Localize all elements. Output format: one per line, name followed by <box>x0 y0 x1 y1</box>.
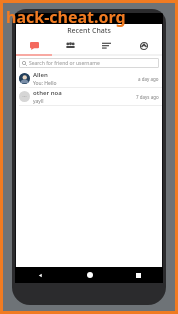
button[interactable]: Allen <box>16 70 162 88</box>
staticText: hack-cheat.org <box>6 6 126 28</box>
staticText: Allen <box>33 71 48 79</box>
staticText: a day ago <box>138 76 159 82</box>
staticText: yayll <box>33 98 44 105</box>
button[interactable]: Chats <box>16 37 52 54</box>
button[interactable]: other noa <box>16 88 162 106</box>
staticText: You: Hello <box>33 80 57 87</box>
staticText: Search for friend or username <box>29 60 100 67</box>
button[interactable]: Home <box>65 267 114 283</box>
staticText: 7 days ago <box>136 94 159 100</box>
button[interactable]: Recent apps <box>114 267 163 283</box>
button[interactable]: Search for friend or username <box>19 58 159 68</box>
button[interactable]: Back <box>15 267 65 283</box>
staticText: Recent Chats <box>67 26 111 36</box>
button[interactable]: Profile <box>125 37 162 54</box>
button[interactable]: Friends <box>52 37 88 54</box>
button[interactable]: Requests <box>88 37 125 54</box>
staticText: other noa <box>33 89 62 97</box>
